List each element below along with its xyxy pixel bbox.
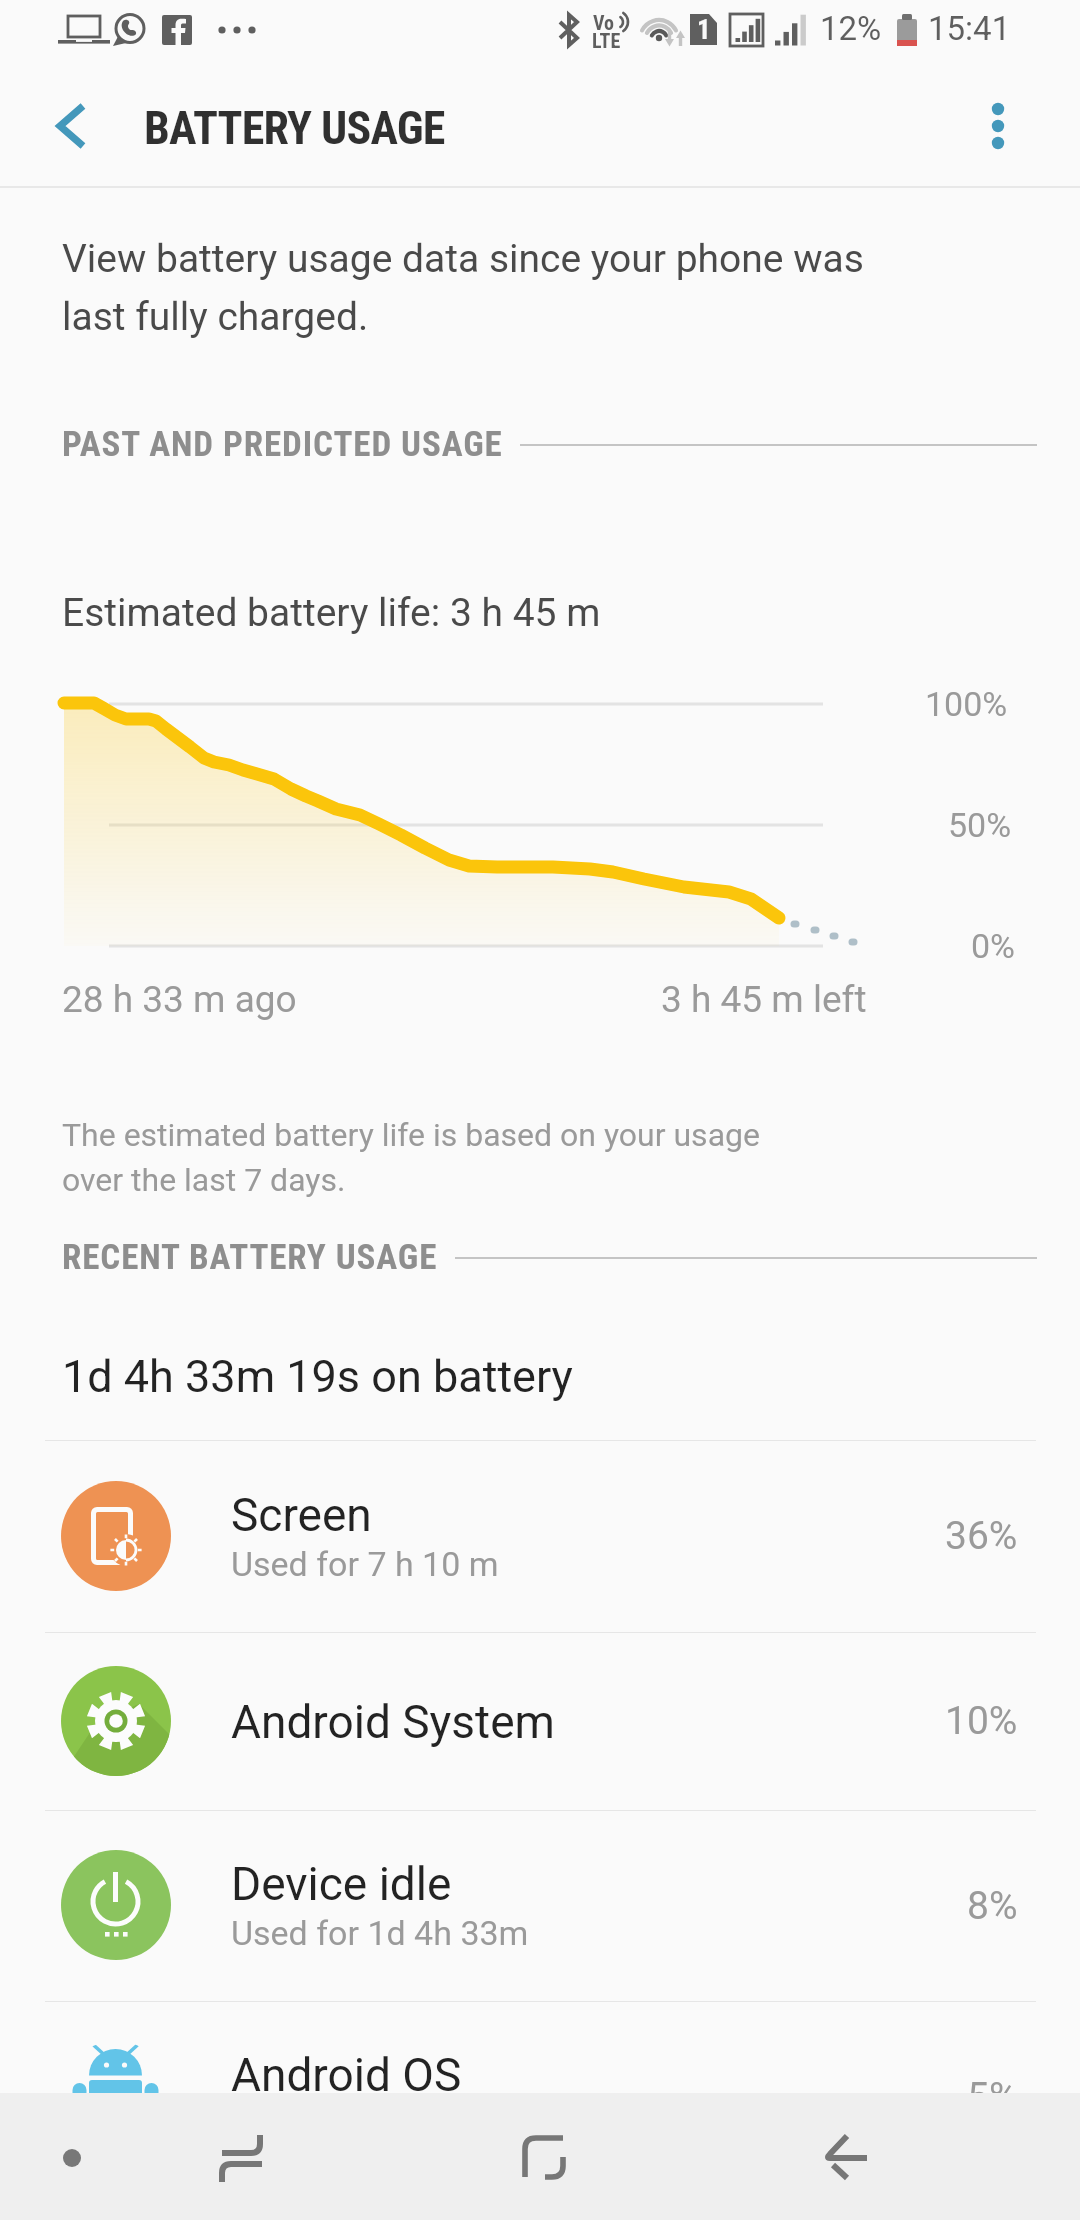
staticText: over the last 7 days. (62, 1161, 346, 1199)
staticText: Used for 1d 4h 33m (231, 2104, 529, 2144)
staticText: 3 h 45 m left (661, 978, 867, 1021)
staticText: 0% (971, 926, 1016, 966)
staticText: RECENT BATTERY USAGE (62, 1237, 438, 1278)
button[interactable]: Android OS (0, 2001, 1080, 2192)
button[interactable]: More options (948, 76, 1048, 176)
staticText: 15:41 (928, 9, 1011, 48)
staticText: 36% (945, 1513, 1018, 1559)
staticText: 28 h 33 m ago (62, 978, 297, 1021)
button[interactable]: Navigate up (16, 76, 126, 186)
staticText: PAST AND PREDICTED USAGE (62, 424, 503, 465)
staticText: Android OS (231, 2048, 462, 2102)
button[interactable]: Android System (0, 1632, 1080, 1810)
staticText: 100% (925, 684, 1008, 724)
staticText: Used for 1d 4h 33m (231, 1913, 529, 1953)
button[interactable]: Back (790, 2093, 930, 2220)
button[interactable]: Home (480, 2093, 610, 2220)
button[interactable]: Screen (0, 1440, 1080, 1632)
staticText: Screen (231, 1488, 372, 1542)
staticText: 50% (948, 805, 1012, 845)
staticText: Vo (593, 11, 615, 34)
staticText: 1d 4h 33m 19s on battery (62, 1350, 573, 1403)
staticText: BATTERY USAGE (144, 101, 445, 155)
staticText: Android System (231, 1695, 555, 1749)
staticText: last fully charged. (62, 294, 369, 340)
staticText: Used for 7 h 10 m (231, 1544, 499, 1584)
button[interactable]: Device idle (0, 1810, 1080, 2001)
staticText: Estimated battery life: 3 h 45 m (62, 590, 601, 636)
button[interactable]: Notification indicator (22, 2093, 270, 2220)
button[interactable]: Recent apps (180, 2093, 350, 2220)
staticText: 1 (697, 14, 711, 46)
staticText: The estimated battery life is based on y… (62, 1116, 760, 1154)
staticText: Device idle (231, 1857, 452, 1911)
staticText: 8% (967, 1883, 1018, 1929)
staticText: 12% (820, 9, 882, 48)
staticText: 5% (967, 2074, 1018, 2120)
staticText: LTE (592, 29, 621, 52)
staticText: 10% (945, 1698, 1018, 1744)
staticText: View battery usage data since your phone… (62, 236, 864, 282)
